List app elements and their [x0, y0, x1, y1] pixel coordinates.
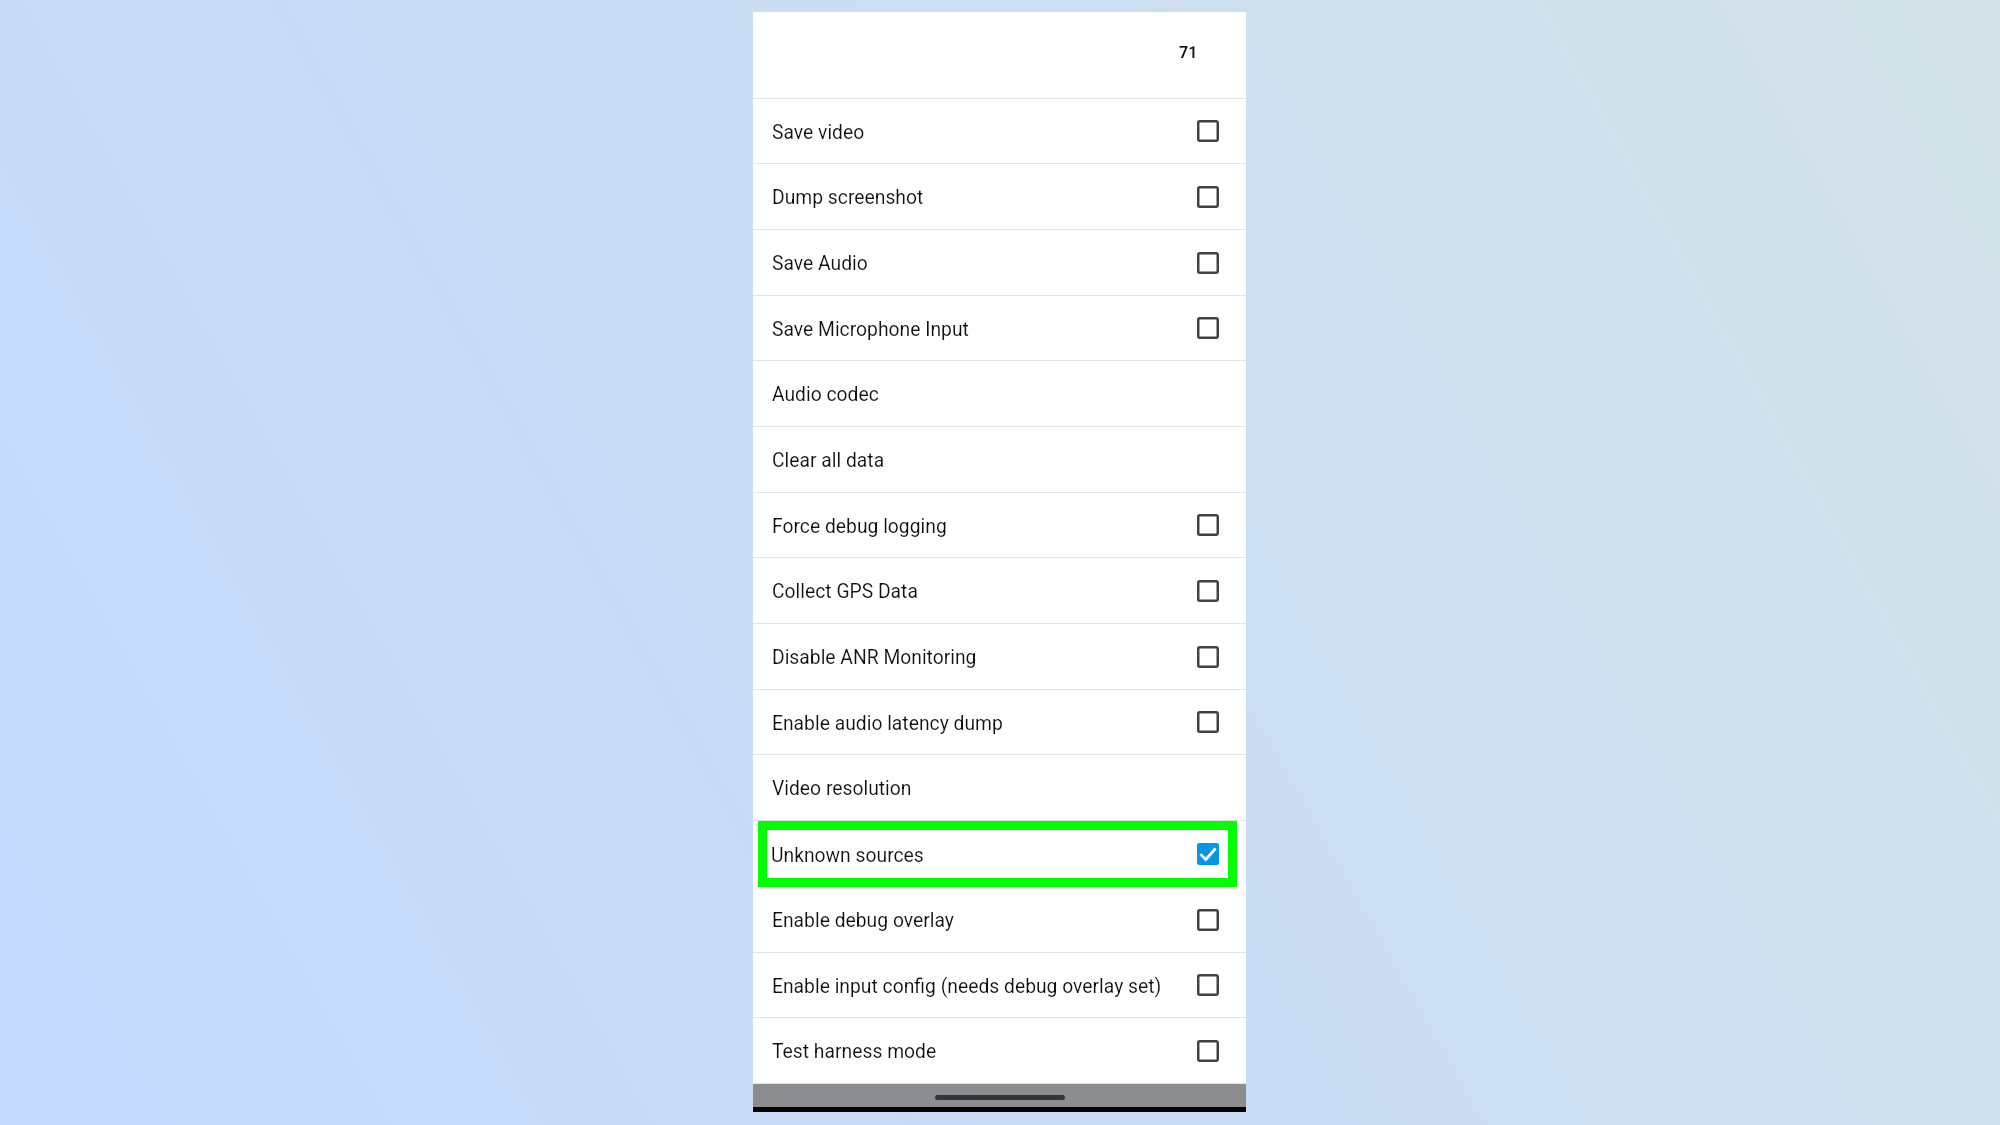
button[interactable]: Unknown sources — [753, 821, 1246, 887]
staticText: Enable audio latency dump — [772, 712, 1003, 735]
button[interactable]: Test harness mode — [753, 1018, 1246, 1083]
staticText: Disable ANR Monitoring — [772, 646, 977, 669]
staticText: Dump screenshot — [772, 186, 924, 209]
button[interactable]: Clear all data — [753, 427, 1246, 492]
staticText: Video resolution — [772, 777, 912, 800]
button[interactable]: Enable audio latency dump — [753, 690, 1246, 754]
staticText: Clear all data — [772, 449, 885, 472]
staticText: Save Microphone Input — [772, 318, 969, 341]
button[interactable]: Force debug logging — [753, 493, 1246, 557]
button[interactable]: Audio codec — [753, 361, 1246, 426]
staticText: Save Audio — [772, 252, 868, 275]
staticText: Unknown sources — [771, 844, 924, 867]
staticText: Enable debug overlay — [772, 909, 954, 932]
button[interactable]: Video resolution — [753, 755, 1246, 820]
staticText: 71 — [1179, 43, 1198, 62]
staticText: Enable input config (needs debug overlay… — [772, 975, 1162, 998]
button[interactable]: Disable ANR Monitoring — [753, 624, 1246, 689]
button[interactable]: Collect GPS Data — [753, 558, 1246, 623]
staticText: Audio codec — [772, 383, 879, 406]
button[interactable]: Enable input config (needs debug overlay… — [753, 953, 1246, 1017]
staticText: Force debug logging — [772, 515, 947, 538]
button[interactable]: Save Audio — [753, 230, 1246, 295]
staticText: Save video — [772, 121, 865, 144]
button[interactable]: Save video — [753, 99, 1246, 163]
staticText: Test harness mode — [772, 1040, 937, 1063]
button[interactable]: Save Microphone Input — [753, 296, 1246, 360]
staticText: Collect GPS Data — [772, 580, 918, 603]
button[interactable]: Enable debug overlay — [753, 887, 1246, 952]
button[interactable]: Dump screenshot — [753, 164, 1246, 229]
button[interactable]: Home — [935, 1095, 1065, 1100]
